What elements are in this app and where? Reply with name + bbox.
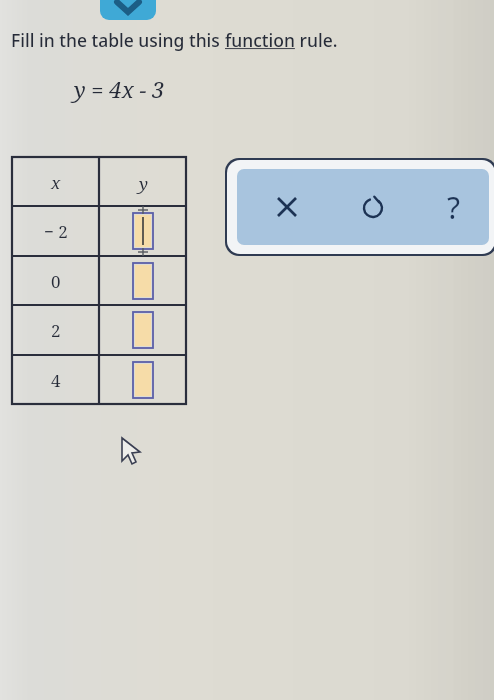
staticText: − 2 xyxy=(44,220,68,243)
button[interactable]: Answer input xyxy=(133,263,153,299)
button[interactable]: Expand xyxy=(100,0,156,20)
button[interactable]: Answer input xyxy=(133,213,153,249)
staticText: ? xyxy=(447,187,461,228)
staticText: Fill in the table using this xyxy=(11,28,225,52)
staticText: 0 xyxy=(51,270,61,293)
button[interactable]: Help xyxy=(419,169,489,245)
staticText: 2 xyxy=(51,319,61,342)
button[interactable]: Answer input xyxy=(133,312,153,348)
button[interactable]: Clear xyxy=(247,169,327,245)
staticText: rule. xyxy=(295,28,338,52)
button[interactable]: Answer input xyxy=(133,362,153,398)
staticText: y = 4x − 3 xyxy=(74,74,165,104)
staticText: x xyxy=(51,171,61,194)
staticText: y xyxy=(139,172,148,195)
staticText: 4 xyxy=(51,369,61,392)
button[interactable]: function xyxy=(225,28,295,52)
button[interactable]: Undo xyxy=(333,169,413,245)
